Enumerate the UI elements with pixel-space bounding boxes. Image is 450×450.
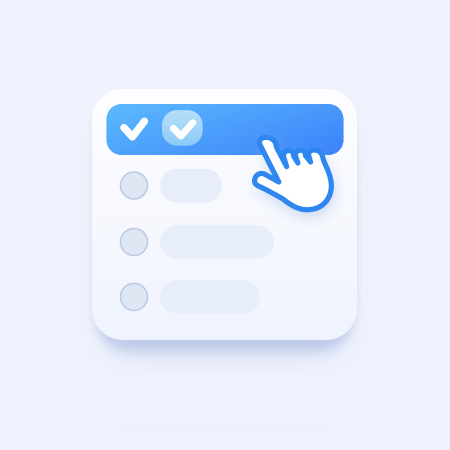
button[interactable]: Third task	[93, 282, 356, 312]
button[interactable]: Second task	[93, 227, 356, 257]
button[interactable]: First task	[93, 170, 356, 200]
button[interactable]: Completed tasks	[106, 104, 343, 155]
